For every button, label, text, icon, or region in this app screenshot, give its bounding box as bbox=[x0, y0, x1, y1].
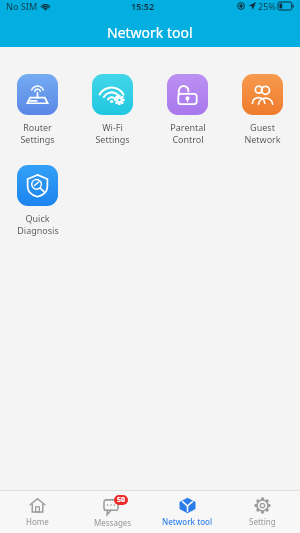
button[interactable]: Network tool bbox=[150, 491, 225, 533]
staticText: Settings bbox=[20, 133, 55, 145]
staticText: Control bbox=[172, 133, 204, 145]
staticText: 25% bbox=[258, 0, 276, 12]
staticText: Network bbox=[244, 133, 281, 145]
staticText: Settings bbox=[95, 133, 130, 145]
button[interactable]: Router Settings bbox=[0, 72, 75, 147]
staticText: Messages bbox=[94, 517, 132, 528]
staticText: Network tool bbox=[162, 516, 213, 527]
staticText: Parental bbox=[170, 121, 206, 133]
button[interactable]: Quick Diagnosis bbox=[0, 163, 75, 238]
button[interactable]: 50 bbox=[75, 491, 150, 533]
staticText: Guest bbox=[250, 121, 275, 133]
button[interactable]: Guest Network bbox=[225, 72, 300, 147]
button[interactable]: Parental Control bbox=[150, 72, 225, 147]
staticText: 15:52 bbox=[131, 0, 155, 12]
button[interactable]: Setting bbox=[225, 491, 300, 533]
staticText: Wi-Fi bbox=[102, 121, 123, 133]
staticText: Setting bbox=[249, 516, 276, 527]
staticText: 50 bbox=[117, 495, 126, 505]
staticText: Router bbox=[23, 121, 52, 133]
staticText: Home bbox=[26, 516, 49, 527]
button[interactable]: Home bbox=[0, 491, 75, 533]
button[interactable]: Wi-Fi Settings bbox=[75, 72, 150, 147]
staticText: Network tool bbox=[107, 23, 193, 42]
staticText: Diagnosis bbox=[17, 224, 59, 236]
staticText: No SIM bbox=[6, 0, 38, 12]
staticText: Quick bbox=[25, 212, 50, 224]
